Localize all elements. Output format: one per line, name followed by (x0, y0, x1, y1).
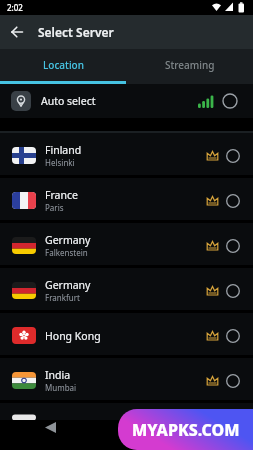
staticText: Falkenstein (45, 247, 88, 258)
staticText: Location (43, 58, 84, 72)
staticText: Finland (45, 143, 82, 157)
staticText: Auto select (41, 94, 96, 108)
staticText: Hong Kong (45, 329, 101, 343)
staticText: Select Server (38, 24, 114, 40)
staticText: Germany (45, 233, 91, 247)
staticText: Streaming (165, 58, 215, 72)
staticText: Paris (45, 202, 64, 213)
button[interactable]: Streaming (126, 49, 253, 81)
staticText: Helsinki (45, 157, 75, 168)
staticText: India (45, 368, 71, 382)
staticText: Mumbai (45, 382, 77, 393)
button[interactable]: Auto select (0, 84, 253, 118)
button[interactable] (0, 420, 253, 450)
button[interactable]: Location (0, 49, 126, 81)
staticText: 2:02 (7, 2, 23, 13)
staticText: France (45, 188, 78, 202)
button[interactable]: MYAPKS.COM (118, 409, 253, 450)
button[interactable]: Finland (0, 133, 253, 178)
staticText: MYAPKS.COM (132, 419, 240, 441)
staticText: Frankfurt (45, 292, 80, 303)
button[interactable]: Germany (0, 268, 253, 313)
button[interactable]: Germany (0, 223, 253, 268)
button[interactable]: Hong Kong (0, 313, 253, 358)
button[interactable]: France (0, 178, 253, 223)
button[interactable]: India (0, 358, 253, 403)
staticText: Germany (45, 278, 91, 292)
button[interactable] (0, 15, 34, 49)
